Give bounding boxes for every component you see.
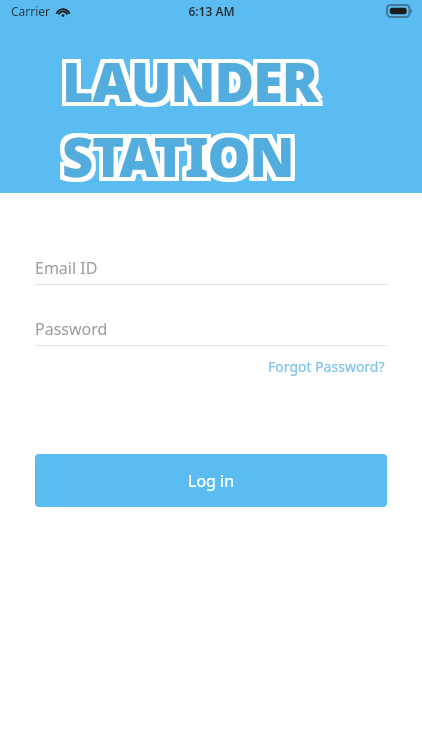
button[interactable]: Password [35, 313, 387, 346]
staticText: STATION [58, 117, 290, 191]
staticText: STATION [58, 115, 290, 189]
staticText: Log in [188, 470, 235, 492]
staticText: LAUNDER [62, 44, 318, 118]
staticText: STATION [58, 119, 290, 193]
button[interactable]: Email ID [35, 252, 387, 285]
staticText: LAUNDER [58, 42, 314, 116]
button[interactable]: Log in [35, 454, 387, 507]
staticText: LAUNDER [60, 40, 316, 114]
staticText: STATION [58, 123, 290, 197]
staticText: LAUNDER [62, 40, 318, 114]
staticText: Email ID [35, 257, 98, 279]
staticText: 6:13 AM [188, 3, 235, 19]
staticText: STATION [66, 115, 298, 189]
staticText: STATION [64, 123, 296, 197]
staticText: LAUNDER [66, 44, 322, 118]
staticText: STATION [62, 119, 294, 193]
staticText: LAUNDER [64, 48, 320, 122]
staticText: LAUNDER [66, 46, 322, 120]
staticText: LAUNDER [58, 44, 314, 118]
staticText: STATION [66, 123, 298, 197]
staticText: Password [35, 318, 108, 340]
staticText: STATION [66, 121, 298, 195]
staticText: STATION [62, 115, 294, 189]
staticText: STATION [62, 123, 294, 197]
staticText: LAUNDER [66, 40, 322, 114]
staticText: LAUNDER [58, 48, 314, 122]
staticText: LAUNDER [66, 48, 322, 122]
staticText: STATION [66, 119, 298, 193]
staticText: Forgot Password? [268, 357, 385, 376]
button[interactable]: Forgot Password? [266, 355, 387, 378]
staticText: LAUNDER [58, 40, 314, 114]
staticText: LAUNDER [62, 48, 318, 122]
staticText: STATION [60, 115, 292, 189]
staticText: Carrier [11, 3, 51, 19]
